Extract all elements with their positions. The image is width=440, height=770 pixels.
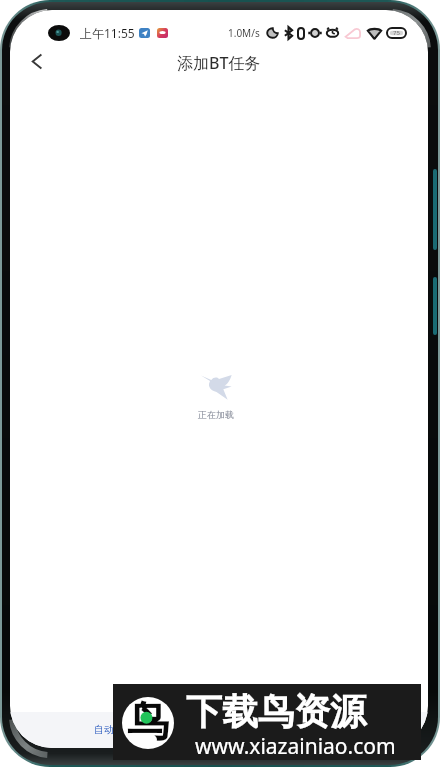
staticText: 下载鸟资源 [186,689,366,734]
staticText: www.xiazainiao.com [195,732,396,761]
staticText: 添加BT任务 [177,52,261,74]
staticText: 正在加载 [198,409,234,420]
button[interactable]: Back [18,42,56,80]
staticText: 鸟 [127,697,169,748]
staticText: 1.0M/s [228,26,260,40]
staticText: 75 [393,29,400,37]
staticText: 上午11:55 [80,25,135,41]
staticText: 自动选择 [94,723,134,736]
button[interactable]: 自动选择 [88,718,140,741]
